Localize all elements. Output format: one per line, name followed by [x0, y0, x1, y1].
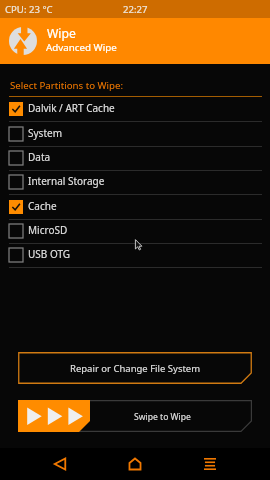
- button[interactable]: Dalvik / ART Cache: [0, 98, 270, 122]
- staticText: Wipe: [47, 25, 76, 42]
- button[interactable]: Recent apps: [195, 449, 225, 479]
- button[interactable]: Internal Storage: [0, 171, 270, 195]
- button[interactable]: MicroSD: [0, 220, 270, 244]
- staticText: USB OTG: [28, 247, 71, 261]
- button[interactable]: Swipe to Wipe: [18, 400, 252, 432]
- button[interactable]: Data: [0, 147, 270, 171]
- button[interactable]: Repair or Change File System: [18, 352, 252, 384]
- staticText: System: [28, 126, 62, 140]
- staticText: Select Partitions to Wipe:: [10, 79, 124, 92]
- staticText: Internal Storage: [28, 174, 105, 188]
- staticText: Dalvik / ART Cache: [28, 101, 115, 115]
- staticText: 22:27: [123, 3, 148, 16]
- button[interactable]: Home: [120, 449, 150, 479]
- staticText: Swipe to Wipe: [134, 411, 191, 423]
- button[interactable]: Cache: [0, 196, 270, 220]
- button[interactable]: USB OTG: [0, 244, 270, 268]
- button[interactable]: Back: [45, 449, 75, 479]
- button[interactable]: Wipe: [0, 18, 270, 64]
- staticText: CPU: 23 °C: [5, 3, 53, 16]
- button[interactable]: System: [0, 123, 270, 147]
- staticText: MicroSD: [28, 223, 68, 237]
- staticText: Advanced Wipe: [46, 41, 117, 54]
- staticText: Data: [28, 150, 51, 164]
- staticText: Cache: [28, 199, 57, 213]
- staticText: Repair or Change File System: [70, 362, 201, 375]
